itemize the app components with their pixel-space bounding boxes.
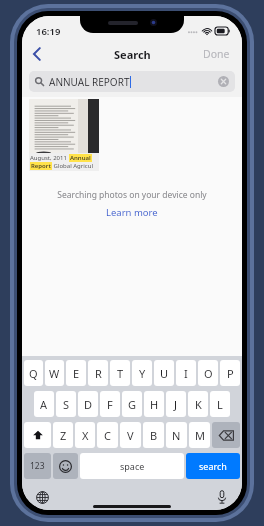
staticText: Z bbox=[60, 428, 67, 443]
staticText: P bbox=[227, 366, 234, 381]
staticText: O bbox=[204, 366, 213, 381]
button[interactable]: J bbox=[166, 391, 186, 417]
button[interactable]: Photo search result bbox=[29, 99, 99, 171]
button[interactable]: Change keyboard language bbox=[32, 487, 52, 507]
button[interactable]: C bbox=[97, 422, 118, 448]
button[interactable]: N bbox=[166, 422, 187, 448]
staticText: S bbox=[63, 397, 70, 412]
button[interactable]: Emoji bbox=[53, 453, 78, 479]
staticText: Q bbox=[29, 366, 38, 381]
staticText: Search bbox=[114, 47, 151, 62]
staticText: Y bbox=[139, 366, 146, 381]
button[interactable]: O bbox=[198, 360, 218, 386]
button[interactable]: H bbox=[144, 391, 164, 417]
button[interactable]: X bbox=[75, 422, 95, 448]
button[interactable]: 123 bbox=[24, 453, 51, 479]
button[interactable]: R bbox=[88, 360, 108, 386]
button[interactable]: Back bbox=[22, 42, 52, 66]
button[interactable]: W bbox=[45, 360, 64, 386]
button[interactable]: ANNUAL REPORT bbox=[29, 71, 235, 92]
staticText: Report bbox=[31, 162, 51, 170]
staticText: Searching photos on your device only bbox=[22, 189, 242, 201]
staticText: V bbox=[127, 428, 134, 443]
button[interactable]: D bbox=[78, 391, 98, 417]
button[interactable]: Learn more bbox=[100, 205, 164, 220]
staticText: D bbox=[84, 397, 93, 412]
staticText: A bbox=[40, 397, 48, 412]
button[interactable]: Q bbox=[24, 360, 43, 386]
button[interactable]: Clear text bbox=[218, 76, 229, 87]
staticText: B bbox=[150, 428, 158, 443]
staticText: M bbox=[195, 428, 205, 443]
button[interactable]: F bbox=[100, 391, 120, 417]
button[interactable]: I bbox=[176, 360, 196, 386]
staticText: X bbox=[82, 428, 89, 443]
button[interactable]: E bbox=[66, 360, 86, 386]
staticText: August, 2011 bbox=[30, 154, 69, 162]
button[interactable]: S bbox=[56, 391, 76, 417]
button[interactable]: L bbox=[210, 391, 230, 417]
staticText: E bbox=[73, 366, 80, 381]
button[interactable]: Y bbox=[132, 360, 152, 386]
staticText: ANNUAL REPORT bbox=[49, 75, 130, 89]
staticText: G bbox=[128, 397, 137, 412]
button[interactable]: P bbox=[220, 360, 240, 386]
button[interactable]: Dictate bbox=[212, 487, 232, 507]
staticText: F bbox=[107, 397, 113, 412]
staticText: U bbox=[160, 366, 169, 381]
staticText: J bbox=[174, 397, 178, 412]
staticText: H bbox=[150, 397, 159, 412]
button[interactable]: A bbox=[34, 391, 54, 417]
staticText: 123 bbox=[30, 460, 45, 472]
button[interactable]: Backspace bbox=[212, 422, 240, 448]
staticText: 16:19 bbox=[36, 25, 61, 38]
staticText: space bbox=[120, 460, 145, 472]
button[interactable]: Z bbox=[53, 422, 73, 448]
button[interactable]: T bbox=[110, 360, 130, 386]
staticText: search bbox=[199, 460, 227, 472]
staticText: Annual bbox=[70, 154, 91, 162]
staticText: K bbox=[195, 397, 202, 412]
staticText: R bbox=[95, 366, 102, 381]
staticText: W bbox=[49, 366, 60, 381]
staticText: L bbox=[217, 397, 223, 412]
button[interactable]: K bbox=[188, 391, 208, 417]
button[interactable]: B bbox=[143, 422, 164, 448]
button[interactable]: space bbox=[80, 453, 184, 479]
staticText: C bbox=[104, 428, 111, 443]
staticText: Done bbox=[203, 47, 230, 61]
button[interactable]: U bbox=[154, 360, 174, 386]
staticText: Global Agricul bbox=[52, 162, 93, 170]
staticText: Learn more bbox=[106, 206, 158, 219]
button[interactable]: search bbox=[186, 453, 240, 479]
staticText: I bbox=[184, 366, 188, 381]
button[interactable]: Shift bbox=[24, 422, 51, 448]
button[interactable]: Done bbox=[191, 42, 242, 66]
button[interactable]: G bbox=[122, 391, 142, 417]
button[interactable]: V bbox=[120, 422, 141, 448]
button[interactable]: M bbox=[189, 422, 210, 448]
staticText: N bbox=[172, 428, 181, 443]
staticText: T bbox=[117, 366, 124, 381]
